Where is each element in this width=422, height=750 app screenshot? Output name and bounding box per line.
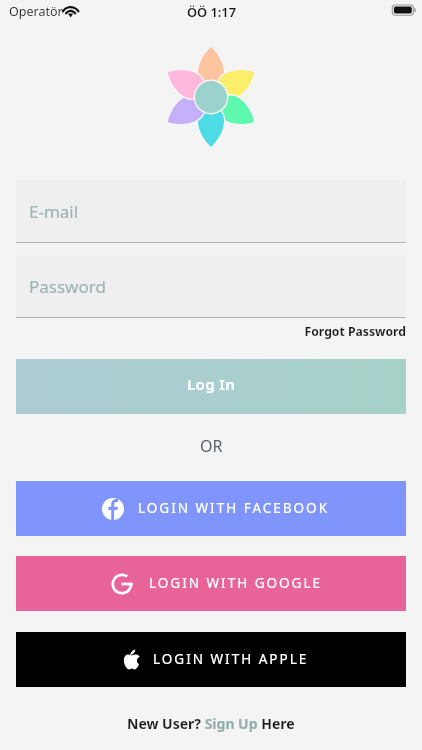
staticText: LOGIN WITH FACEBOOK xyxy=(138,499,330,517)
staticText: ÖÖ 1:17 xyxy=(187,3,236,20)
staticText: Log In xyxy=(187,374,236,394)
button[interactable]: E-mail xyxy=(16,180,406,242)
button[interactable]: LOGIN WITH FACEBOOK xyxy=(16,481,406,536)
staticText: OR xyxy=(200,435,223,457)
staticText: Password xyxy=(29,275,106,298)
button[interactable]: Forgot Password xyxy=(0,323,406,340)
staticText: E-mail xyxy=(29,200,79,223)
button[interactable]: LOGIN WITH APPLE xyxy=(16,632,406,687)
button[interactable]: LOGIN WITH GOOGLE xyxy=(16,556,406,611)
staticText: LOGIN WITH GOOGLE xyxy=(149,574,322,592)
button[interactable]: New User? Sign Up Here xyxy=(127,714,295,733)
staticText: Operatör xyxy=(9,3,63,20)
staticText: LOGIN WITH APPLE xyxy=(153,650,309,668)
button[interactable]: Password xyxy=(16,255,406,317)
button[interactable]: Log In xyxy=(16,359,406,414)
